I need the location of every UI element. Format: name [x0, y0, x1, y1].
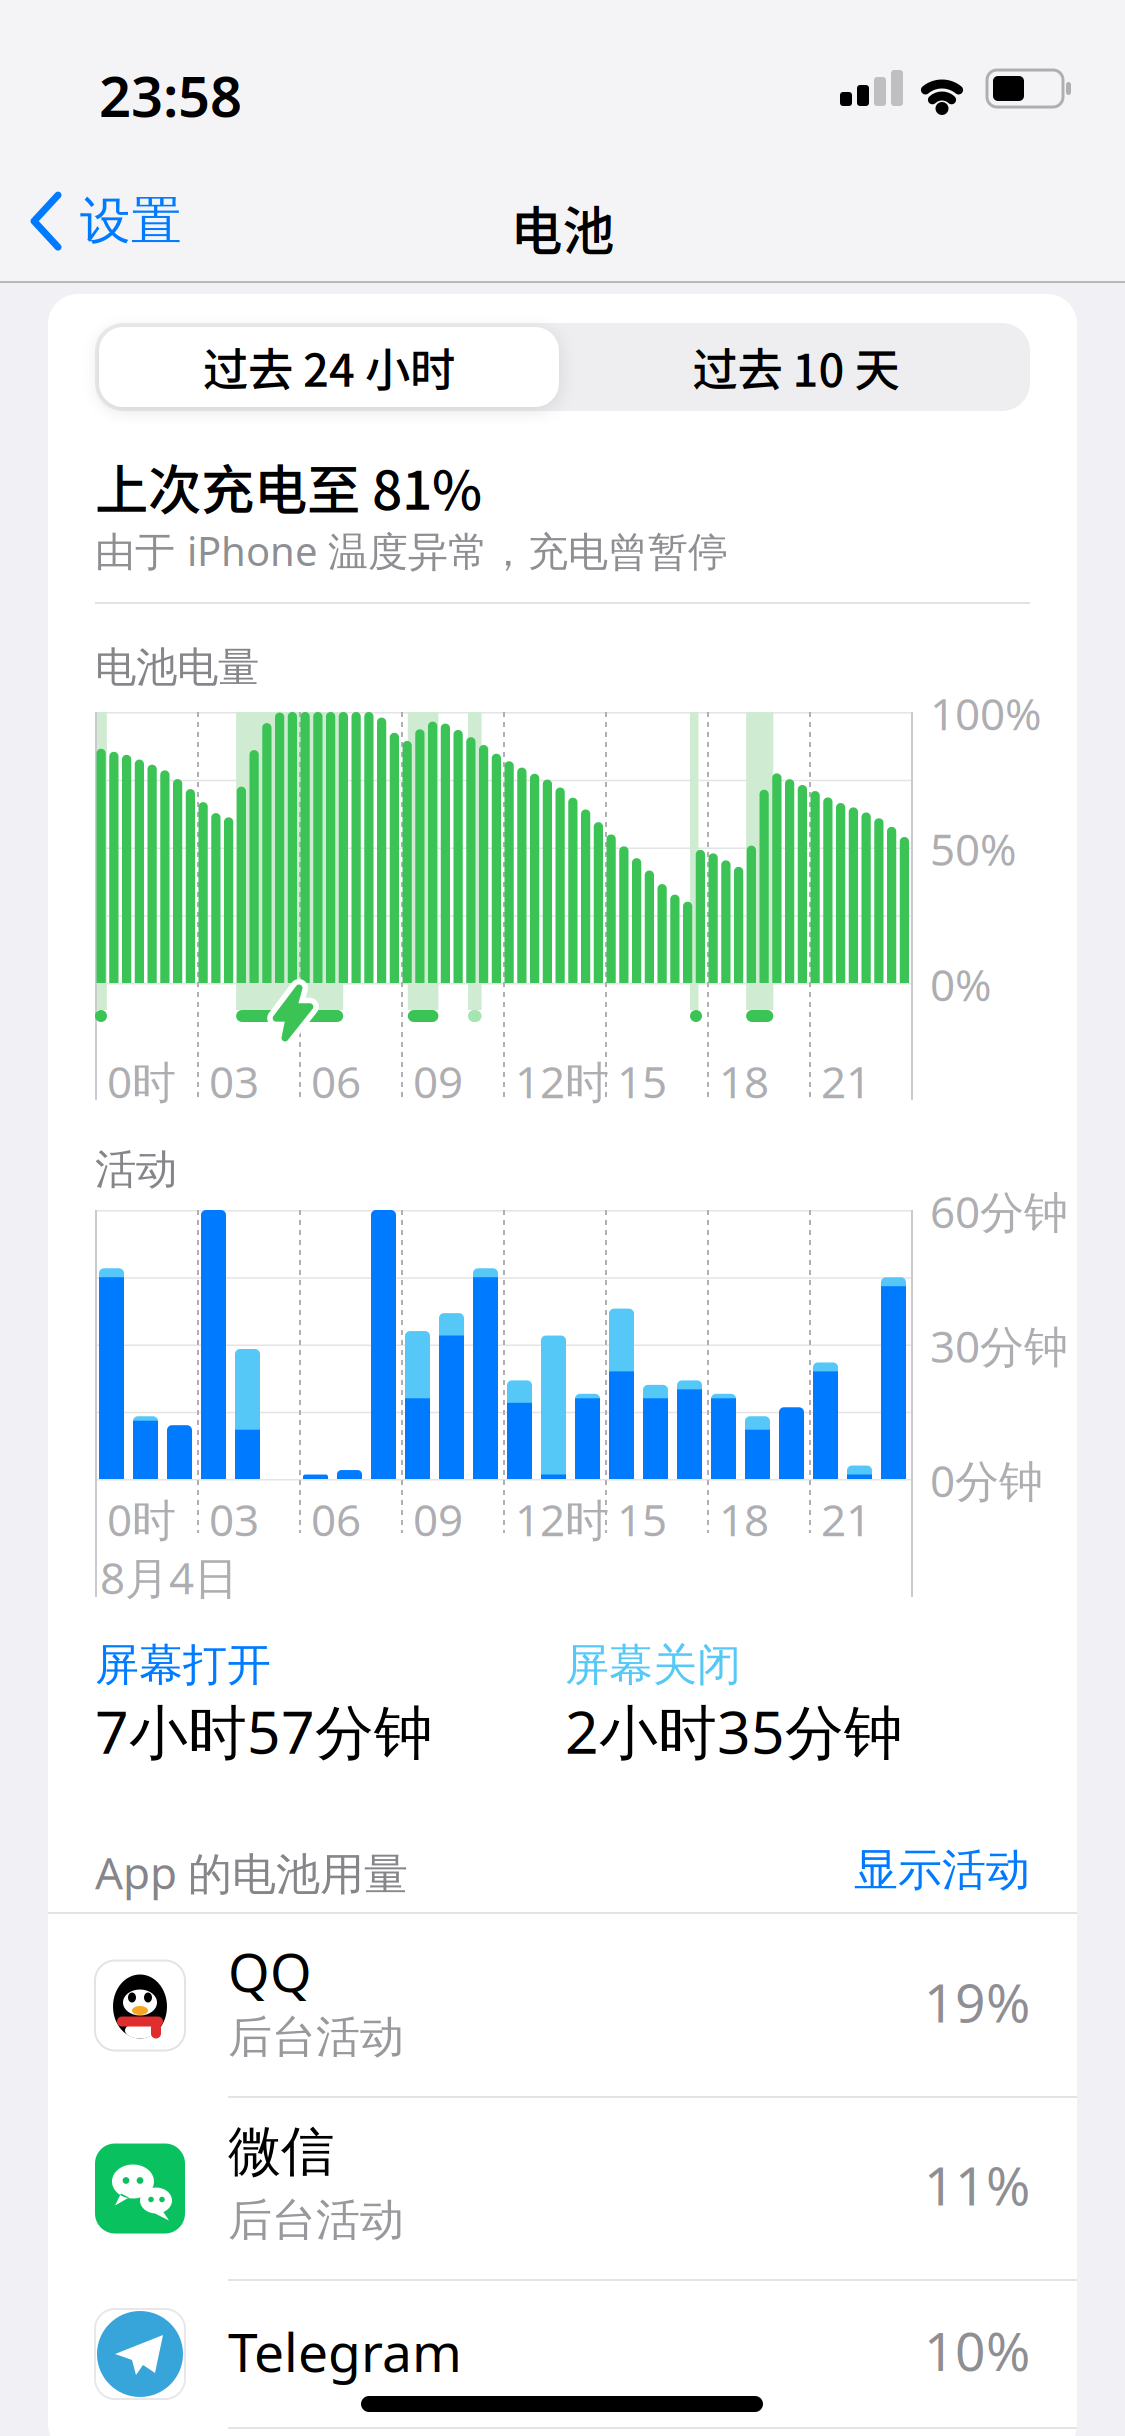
staticText: App 的电池用量 — [95, 1843, 408, 1902]
staticText: 显示活动 — [854, 1843, 1030, 1897]
staticText: 09 — [413, 1052, 463, 1110]
button[interactable]: 过去 24 小时 — [99, 327, 559, 407]
staticText: 23:58 — [99, 58, 242, 132]
staticText: 09 — [413, 1490, 463, 1548]
staticText: 12时 — [515, 1052, 609, 1110]
staticText: 18 — [719, 1490, 769, 1548]
staticText: 19% — [924, 1966, 1030, 2037]
staticText: 18 — [719, 1052, 769, 1110]
staticText: 过去 24 小时 — [203, 334, 455, 400]
button[interactable]: QQ — [48, 1914, 1077, 2097]
staticText: 100% — [930, 684, 1042, 742]
staticText: 后台活动 — [228, 2010, 404, 2064]
staticText: 屏幕打开 — [95, 1638, 271, 1692]
staticText: 15 — [617, 1490, 667, 1548]
staticText: 电池电量 — [95, 642, 259, 693]
staticText: 电池 — [510, 190, 614, 265]
staticText: 8月4日 — [100, 1548, 238, 1606]
staticText: 2小时35分钟 — [565, 1692, 903, 1770]
staticText: 06 — [311, 1052, 361, 1110]
staticText: 设置 — [80, 190, 182, 252]
staticText: 60分钟 — [930, 1182, 1068, 1240]
button[interactable]: 过去 10 天 — [566, 327, 1026, 407]
staticText: 微信 — [228, 2119, 334, 2184]
staticText: 0时 — [107, 1052, 176, 1110]
staticText: 0% — [930, 955, 992, 1013]
staticText: 上次充电至 81% — [95, 448, 482, 525]
staticText: 后台活动 — [228, 2193, 404, 2247]
staticText: 由于 iPhone 温度异常，充电曾暂停 — [95, 524, 728, 577]
staticText: 06 — [311, 1490, 361, 1548]
staticText: 11% — [924, 2149, 1030, 2220]
staticText: Telegram — [228, 2316, 462, 2387]
staticText: 30分钟 — [930, 1316, 1068, 1375]
staticText: 0时 — [107, 1490, 176, 1548]
staticText: QQ — [228, 1936, 312, 2007]
staticText: 屏幕关闭 — [565, 1638, 741, 1692]
button[interactable]: 设置 — [32, 190, 182, 252]
button[interactable]: Telegram — [48, 2280, 1077, 2428]
staticText: 03 — [209, 1490, 259, 1548]
staticText: 10% — [924, 2315, 1030, 2386]
staticText: 过去 10 天 — [692, 334, 899, 400]
staticText: 0分钟 — [930, 1451, 1043, 1509]
staticText: 7小时57分钟 — [95, 1692, 433, 1770]
staticText: 21 — [821, 1052, 871, 1110]
button[interactable]: 微信 — [48, 2097, 1077, 2280]
staticText: 活动 — [95, 1144, 177, 1195]
staticText: 21 — [821, 1490, 871, 1548]
staticText: 50% — [930, 819, 1017, 878]
staticText: 12时 — [515, 1490, 609, 1548]
staticText: 03 — [209, 1052, 259, 1110]
staticText: 15 — [617, 1052, 667, 1110]
button[interactable]: 显示活动 — [630, 1843, 1030, 1897]
